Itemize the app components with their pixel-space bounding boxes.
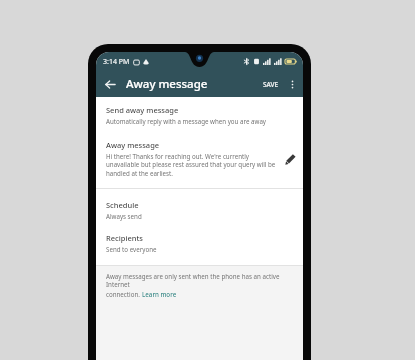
- staticText: Away messages are only sent when the pho…: [106, 272, 293, 288]
- button[interactable]: Recipients: [96, 231, 303, 255]
- staticText: 3:14 PM: [103, 57, 130, 67]
- staticText: Send away message: [106, 105, 179, 115]
- button[interactable]: Schedule: [96, 198, 303, 222]
- staticText: Away message: [106, 140, 160, 150]
- staticText: Recipients: [106, 233, 143, 243]
- staticText: Send to everyone: [106, 245, 157, 253]
- staticText: Schedule: [106, 200, 139, 210]
- button[interactable]: More options: [283, 75, 301, 93]
- button[interactable]: Send away message: [96, 103, 303, 127]
- staticText: Learn more: [142, 290, 177, 298]
- staticText: SAVE: [263, 80, 279, 89]
- staticText: Hi there! Thanks for reaching out. We're…: [106, 152, 277, 177]
- staticText: connection.: [106, 290, 142, 298]
- staticText: Away message: [126, 76, 208, 92]
- button[interactable]: Back: [101, 75, 119, 93]
- button[interactable]: Edit away message: [277, 146, 303, 172]
- button[interactable]: SAVE: [259, 76, 283, 93]
- staticText: Automatically reply with a message when …: [106, 117, 267, 125]
- button[interactable]: Away message: [96, 138, 303, 179]
- staticText: Always send: [106, 212, 142, 220]
- button[interactable]: Learn more: [142, 290, 177, 298]
